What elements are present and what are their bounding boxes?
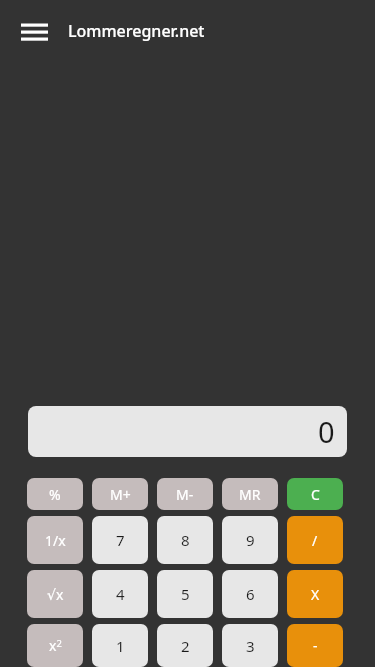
staticText: C xyxy=(311,485,320,504)
button[interactable]: 5 xyxy=(157,570,213,618)
button[interactable]: 4 xyxy=(92,570,148,618)
staticText: M- xyxy=(176,485,194,504)
button[interactable]: Menu xyxy=(21,20,48,42)
staticText: Lommeregner.net xyxy=(68,20,205,42)
button[interactable]: C xyxy=(287,478,343,510)
staticText: M+ xyxy=(110,485,131,504)
button[interactable]: 7 xyxy=(92,516,148,564)
button[interactable]: √x xyxy=(27,570,83,618)
button[interactable]: x2 xyxy=(27,624,83,667)
button[interactable]: / xyxy=(287,516,343,564)
staticText: √x xyxy=(47,585,64,604)
button[interactable]: 1 xyxy=(92,624,148,667)
button[interactable]: 6 xyxy=(222,570,278,618)
staticText: 6 xyxy=(246,584,255,604)
staticText: MR xyxy=(239,485,261,504)
staticText: 0 xyxy=(318,412,335,451)
button[interactable]: M- xyxy=(157,478,213,510)
staticText: 1 xyxy=(116,636,125,656)
button[interactable]: - xyxy=(287,624,343,667)
staticText: / xyxy=(312,531,318,550)
button[interactable]: 3 xyxy=(222,624,278,667)
button[interactable]: 2 xyxy=(157,624,213,667)
button[interactable]: 1/x xyxy=(27,516,83,564)
button[interactable]: 8 xyxy=(157,516,213,564)
staticText: x2 xyxy=(49,636,62,655)
button[interactable]: 0 xyxy=(28,406,347,457)
staticText: 3 xyxy=(246,636,255,656)
staticText: 8 xyxy=(181,530,190,550)
button[interactable]: 9 xyxy=(222,516,278,564)
button[interactable]: MR xyxy=(222,478,278,510)
staticText: 1/x xyxy=(45,531,66,550)
staticText: 5 xyxy=(181,584,190,604)
staticText: % xyxy=(49,485,61,504)
staticText: X xyxy=(311,585,320,604)
button[interactable]: % xyxy=(27,478,83,510)
staticText: 2 xyxy=(181,636,190,656)
staticText: 9 xyxy=(246,530,255,550)
button[interactable]: M+ xyxy=(92,478,148,510)
staticText: - xyxy=(313,636,318,655)
staticText: 4 xyxy=(116,584,125,604)
button[interactable]: X xyxy=(287,570,343,618)
staticText: 7 xyxy=(116,530,125,550)
